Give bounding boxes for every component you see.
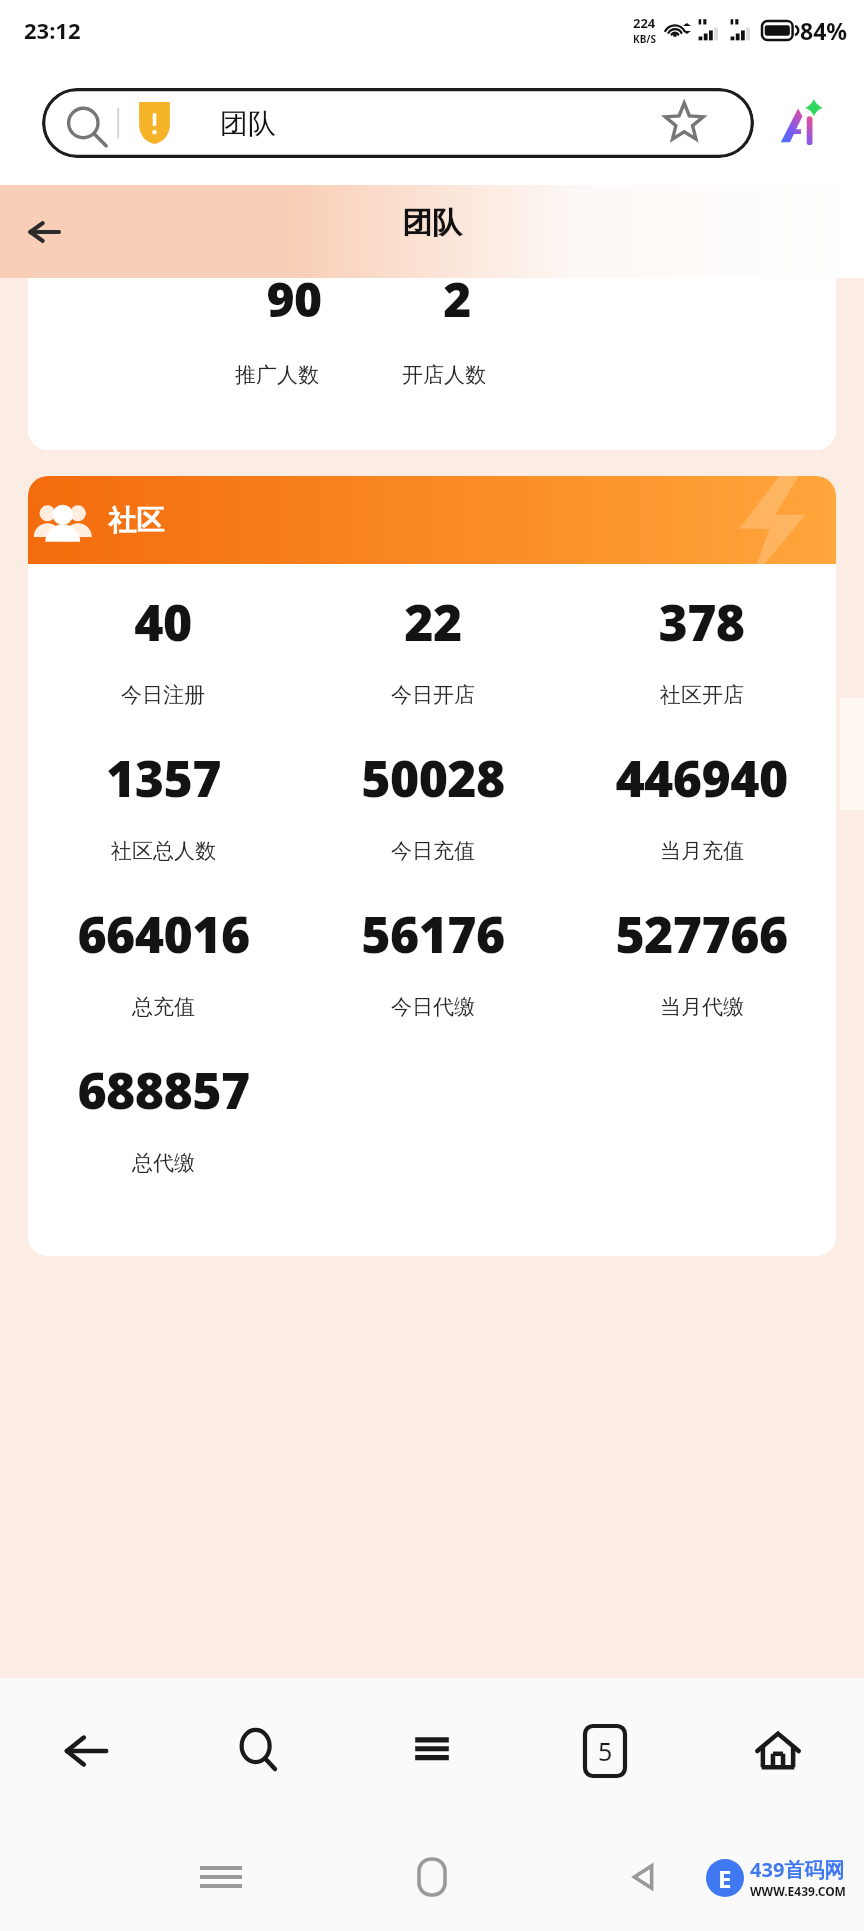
staticText: 378 (658, 588, 745, 656)
staticText: 5 (598, 1734, 613, 1768)
staticText: 社区开店 (660, 682, 744, 708)
button[interactable]: 378 (567, 588, 836, 744)
staticText: 当月代缴 (660, 994, 744, 1020)
staticText: 团队 (220, 106, 276, 141)
staticText: WWW.E439.COM (750, 1883, 846, 1899)
staticText: 446940 (615, 744, 788, 812)
staticText: 社区总人数 (111, 838, 216, 864)
button[interactable]: 社区 (28, 476, 836, 564)
staticText: 50028 (361, 744, 505, 812)
button[interactable]: Menu (345, 1678, 518, 1823)
button[interactable]: 团队 (42, 88, 754, 158)
button[interactable]: Back (16, 204, 72, 260)
button[interactable]: 688857 (28, 1056, 298, 1212)
staticText: 推广人数 (235, 362, 319, 388)
staticText: 40 (134, 588, 192, 656)
staticText: 社区 (108, 503, 164, 538)
button[interactable]: 50028 (298, 744, 567, 900)
staticText: 当月充值 (660, 838, 744, 864)
staticText: 今日代缴 (391, 994, 475, 1020)
staticText: 23:12 (24, 15, 81, 45)
staticText: 今日充值 (391, 838, 475, 864)
staticText: 22 (404, 588, 462, 656)
staticText: 总充值 (132, 994, 195, 1020)
staticText: 团队 (402, 204, 462, 242)
staticText: 90 (266, 278, 322, 331)
staticText: 开店人数 (402, 362, 486, 388)
staticText: 2 (443, 278, 471, 331)
button[interactable]: Search (172, 1678, 345, 1823)
staticText: 688857 (77, 1056, 250, 1124)
button[interactable]: 56176 (298, 900, 567, 1056)
staticText: 今日注册 (121, 682, 205, 708)
staticText: 今日开店 (391, 682, 475, 708)
button[interactable]: 664016 (28, 900, 298, 1056)
staticText: 84% (800, 15, 848, 46)
button[interactable]: Home (691, 1678, 864, 1823)
staticText: 439首码网 (750, 1856, 845, 1883)
staticText: 224 (633, 14, 656, 32)
button[interactable]: Back (0, 1678, 172, 1823)
staticText: 664016 (77, 900, 250, 968)
button[interactable]: 1357 (28, 744, 298, 900)
button[interactable]: 40 (28, 588, 298, 744)
button[interactable]: 22 (298, 588, 567, 744)
button[interactable]: 446940 (567, 744, 836, 900)
staticText: 56176 (361, 900, 505, 968)
staticText: 总代缴 (132, 1150, 195, 1176)
button[interactable]: 527766 (567, 900, 836, 1056)
button[interactable]: 90 (28, 278, 836, 450)
staticText: 1357 (106, 744, 221, 812)
staticText: 527766 (615, 900, 788, 968)
staticText: E (718, 1862, 732, 1895)
button[interactable]: Tabs (518, 1678, 691, 1823)
button[interactable]: AI assistant (776, 99, 824, 147)
staticText: KB/S (633, 32, 656, 46)
